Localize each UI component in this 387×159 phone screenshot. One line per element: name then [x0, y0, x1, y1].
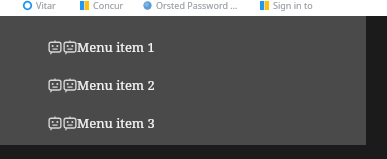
staticText: Menu item 2: [77, 76, 155, 94]
other: Menu icon: [48, 78, 62, 92]
staticText: Menu item 3: [77, 114, 155, 132]
button[interactable]: Orsted Password M...: [138, 0, 245, 13]
button[interactable]: Menu icon: [0, 66, 366, 104]
other: Menu icon: [63, 116, 77, 130]
staticText: Sign in to: [273, 0, 323, 11]
other: Menu icon: [63, 40, 77, 54]
button[interactable]: Concur: [75, 0, 130, 13]
button[interactable]: Vitar: [18, 0, 67, 13]
button[interactable]: Menu icon: [0, 28, 366, 66]
staticText: Menu item 1: [77, 38, 155, 56]
other: Menu icon: [63, 78, 77, 92]
other: Menu icon: [48, 40, 62, 54]
staticText: Concur: [93, 0, 125, 11]
staticText: Vitar: [36, 0, 62, 11]
staticText: Orsted Password M...: [156, 0, 240, 11]
other: Menu icon: [48, 116, 62, 130]
button[interactable]: Sign in to: [255, 0, 328, 13]
button[interactable]: Menu icon: [0, 104, 366, 142]
